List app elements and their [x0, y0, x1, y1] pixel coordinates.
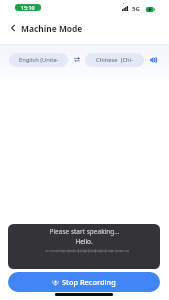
- staticText: Hello.: [75, 237, 93, 246]
- button[interactable]: Chinese (Chi-: [85, 53, 144, 67]
- staticText: 5G: [132, 5, 140, 13]
- staticText: Machine Mode: [21, 23, 83, 34]
- button[interactable]: Speaker: [147, 53, 160, 66]
- button[interactable]: Back: [7, 22, 19, 34]
- button[interactable]: English (Unite-: [9, 53, 68, 67]
- button[interactable]: Stop Recording: [8, 272, 160, 292]
- staticText: Stop Recording: [62, 277, 116, 287]
- staticText: Please start speaking...: [49, 227, 120, 236]
- staticText: 15:10: [21, 4, 35, 11]
- staticText: English (Unite-: [19, 56, 59, 64]
- button[interactable]: Swap languages: [71, 53, 83, 65]
- staticText: Chinese (Chi-: [96, 56, 134, 64]
